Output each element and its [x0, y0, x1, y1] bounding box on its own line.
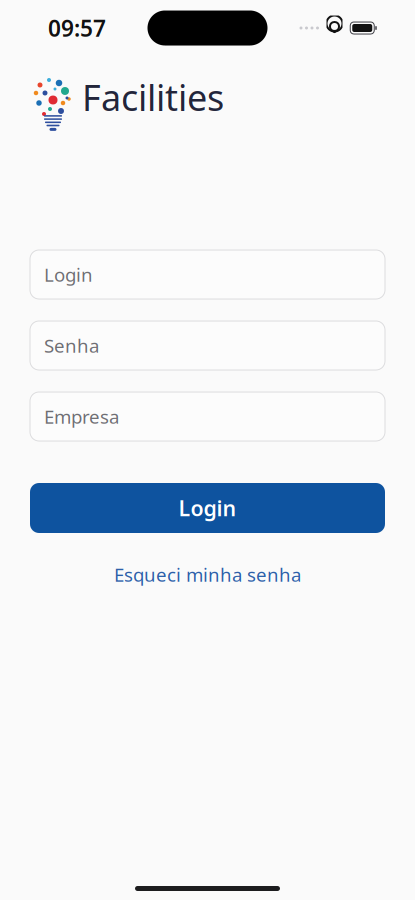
button[interactable]: Login — [30, 250, 385, 299]
staticText: 09:57 — [48, 13, 106, 43]
staticText: Esqueci minha senha — [114, 562, 301, 587]
button[interactable]: Senha — [30, 321, 385, 370]
staticText: Login — [178, 494, 236, 522]
staticText: Empresa — [44, 404, 119, 429]
staticText: Login — [44, 262, 93, 287]
button[interactable]: Esqueci minha senha — [98, 556, 317, 593]
staticText: Facilities — [82, 73, 224, 121]
button[interactable]: Empresa — [30, 392, 385, 441]
button[interactable]: Login — [30, 483, 385, 533]
staticText: Senha — [44, 333, 99, 358]
